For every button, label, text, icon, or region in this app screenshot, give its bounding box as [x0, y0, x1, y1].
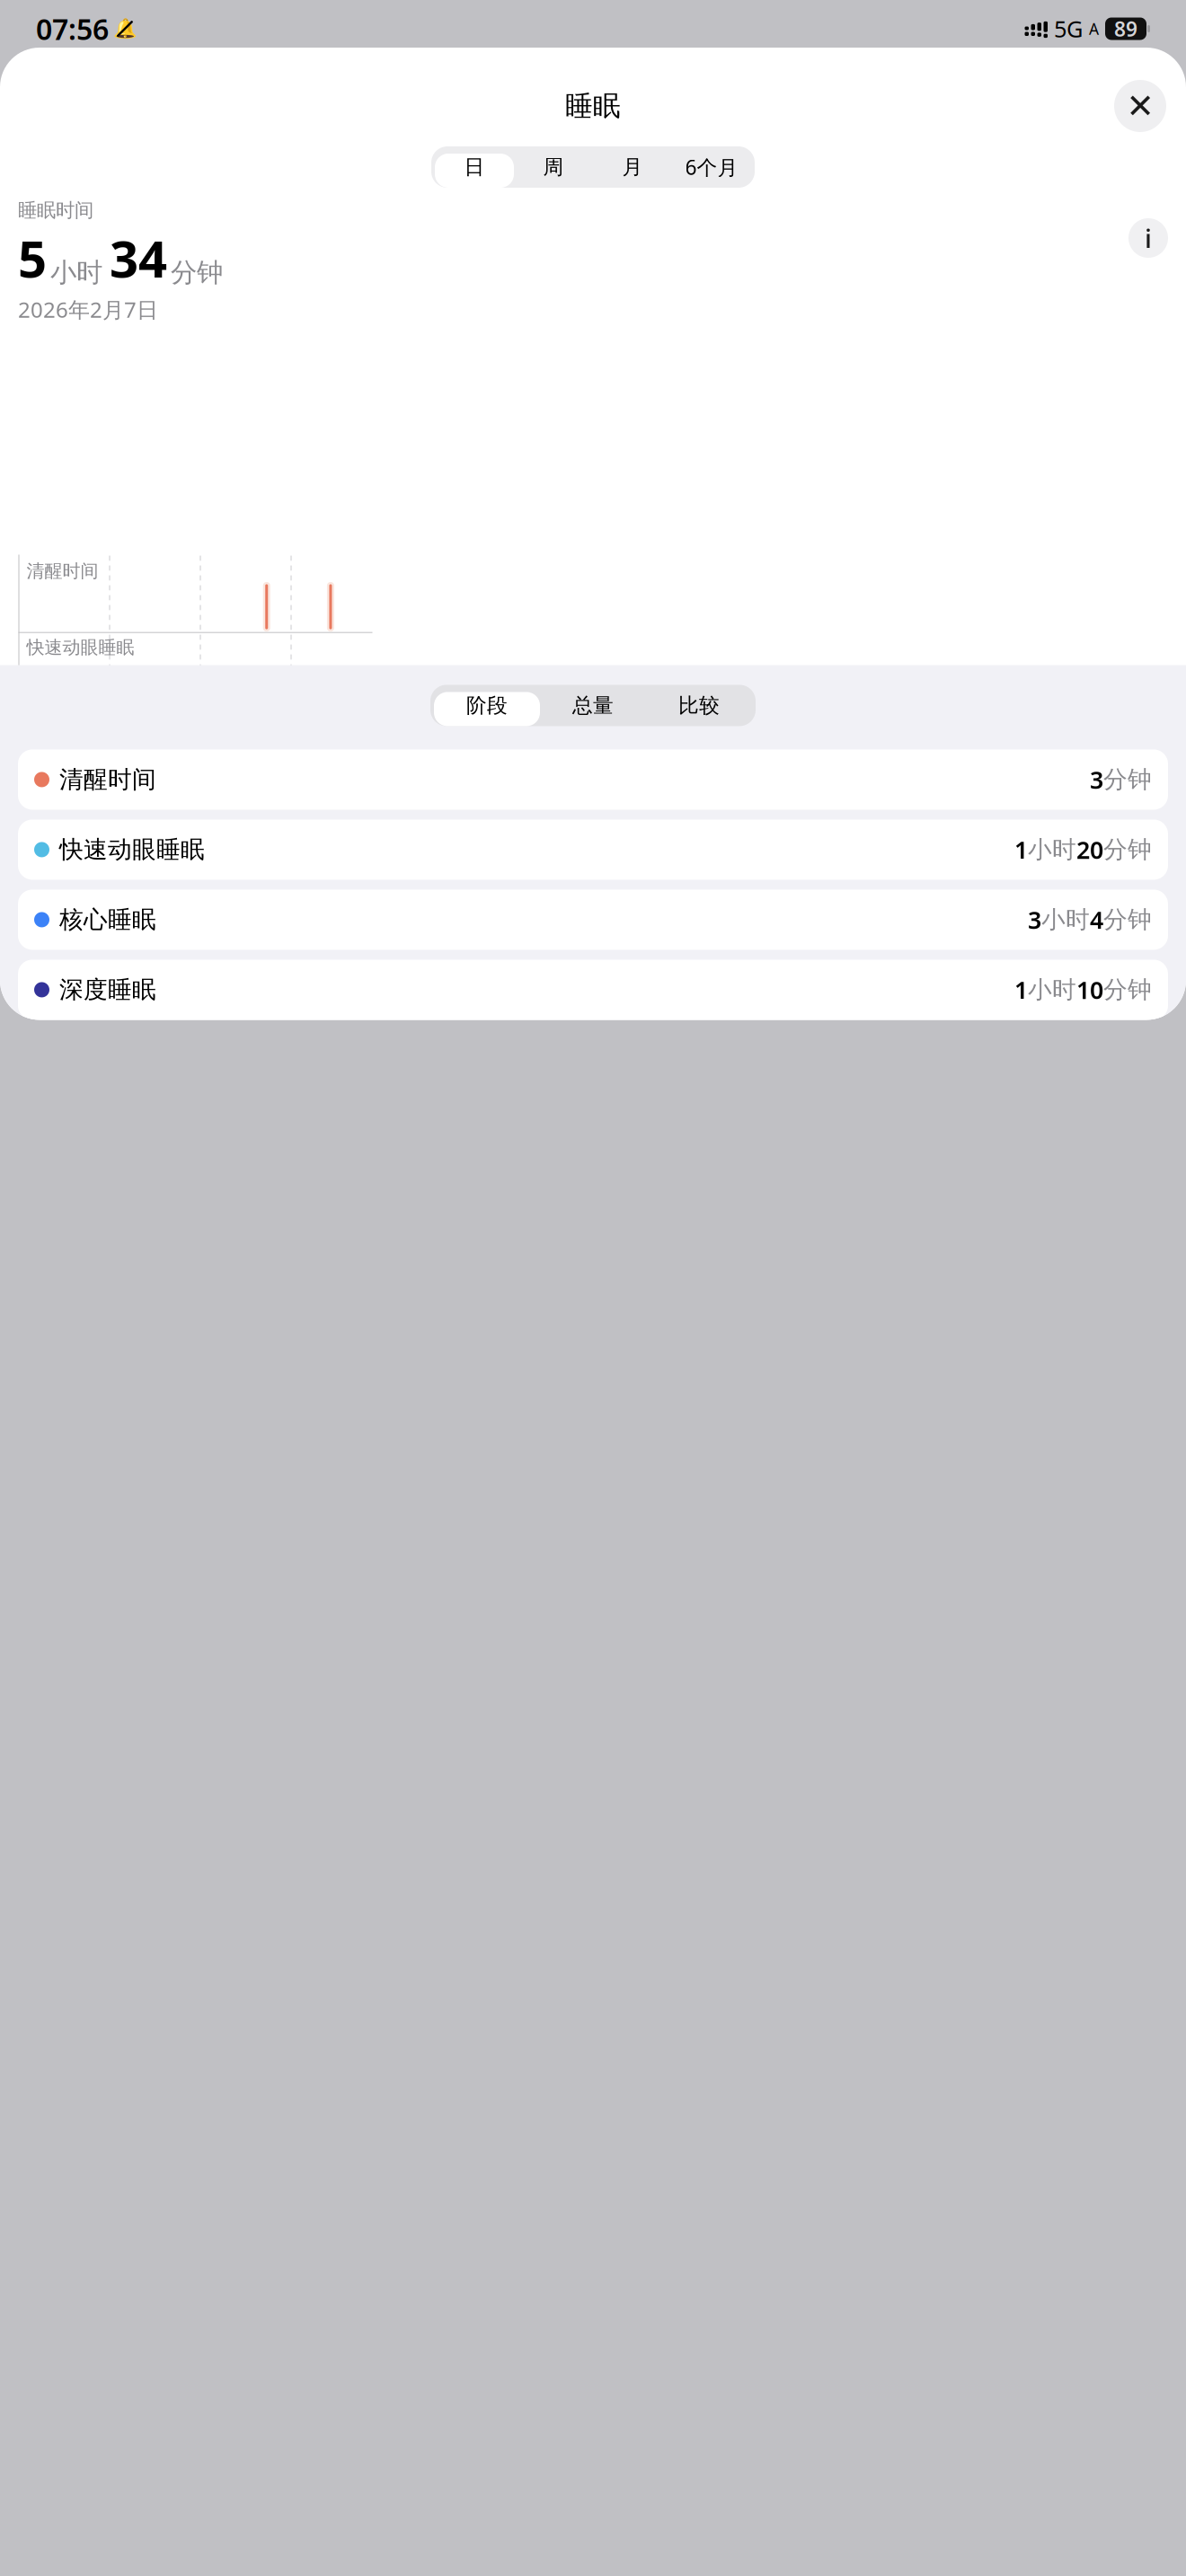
staticText: 1 [1014, 834, 1028, 865]
button[interactable]: 总量 [540, 685, 646, 726]
button[interactable]: 阶段 [434, 685, 540, 726]
staticText: 分钟 [1103, 835, 1152, 864]
staticText: 🔔 [113, 18, 137, 40]
button[interactable]: 核心睡眠 [18, 890, 1168, 950]
button[interactable]: 周 [514, 146, 593, 188]
staticText: 日 [464, 155, 485, 180]
staticText: 深度睡眠 [59, 975, 156, 1005]
staticText: 3 [1090, 764, 1103, 795]
staticText: 2026年2月7日 [18, 295, 158, 324]
staticText: 小时 [1028, 975, 1076, 1005]
staticText: 睡眠 [565, 89, 621, 123]
staticText: 深度睡眠 [27, 790, 98, 812]
staticText: 睡眠时间 [18, 198, 93, 222]
button[interactable]: 清醒时间 [18, 749, 1168, 810]
button[interactable]: 月 [593, 146, 672, 188]
button[interactable]: 6个月 [672, 146, 751, 188]
staticText: 分钟 [171, 256, 223, 289]
staticText: 比较 [678, 693, 720, 718]
staticText: A [1089, 18, 1099, 39]
staticText: ✕ [1126, 87, 1154, 125]
staticText: 1 [1014, 974, 1028, 1006]
staticText: 分钟 [1103, 765, 1152, 794]
staticText: 总量 [572, 693, 614, 718]
staticText: 89 [1114, 15, 1137, 42]
button[interactable]: 深度睡眠 [18, 960, 1168, 1020]
staticText: 小时 [1028, 835, 1076, 864]
staticText: 清醒时间 [27, 560, 98, 582]
staticText: 小时 [1041, 905, 1090, 934]
staticText: 34 [110, 225, 167, 292]
staticText: 分钟 [1103, 975, 1152, 1005]
staticText: 周 [543, 155, 564, 180]
staticText: 06:00 [293, 881, 342, 907]
staticText: 快速动眼睡眠 [27, 636, 134, 659]
staticText: 快速动眼睡眠 [59, 835, 205, 864]
staticText: 分钟 [1103, 905, 1152, 934]
staticText: 10 [1076, 974, 1103, 1006]
staticText: 5G [1054, 14, 1083, 44]
button[interactable]: 关闭 [1114, 80, 1166, 132]
button[interactable]: 比较 [646, 685, 752, 726]
staticText: 核心睡眠 [59, 905, 156, 934]
staticText: 07:56 [36, 10, 109, 48]
button[interactable]: 更多信息 [1128, 218, 1168, 258]
staticText: 5 [18, 225, 47, 292]
staticText: 00:00 [21, 881, 70, 907]
staticText: 月 [622, 155, 643, 180]
staticText: 4 [1090, 904, 1103, 936]
staticText: 阶段 [466, 693, 508, 718]
staticText: 清醒时间 [59, 765, 156, 794]
staticText: 小时 [50, 256, 102, 289]
button[interactable]: 快速动眼睡眠 [18, 820, 1168, 880]
button[interactable]: 日 [435, 146, 514, 188]
staticText: 3 [1028, 904, 1041, 936]
staticText: 20 [1076, 834, 1103, 865]
staticText: 6个月 [685, 154, 738, 181]
staticText: 04:00 [203, 881, 251, 907]
staticText: i [1145, 221, 1152, 256]
staticText: 02:00 [112, 881, 160, 907]
